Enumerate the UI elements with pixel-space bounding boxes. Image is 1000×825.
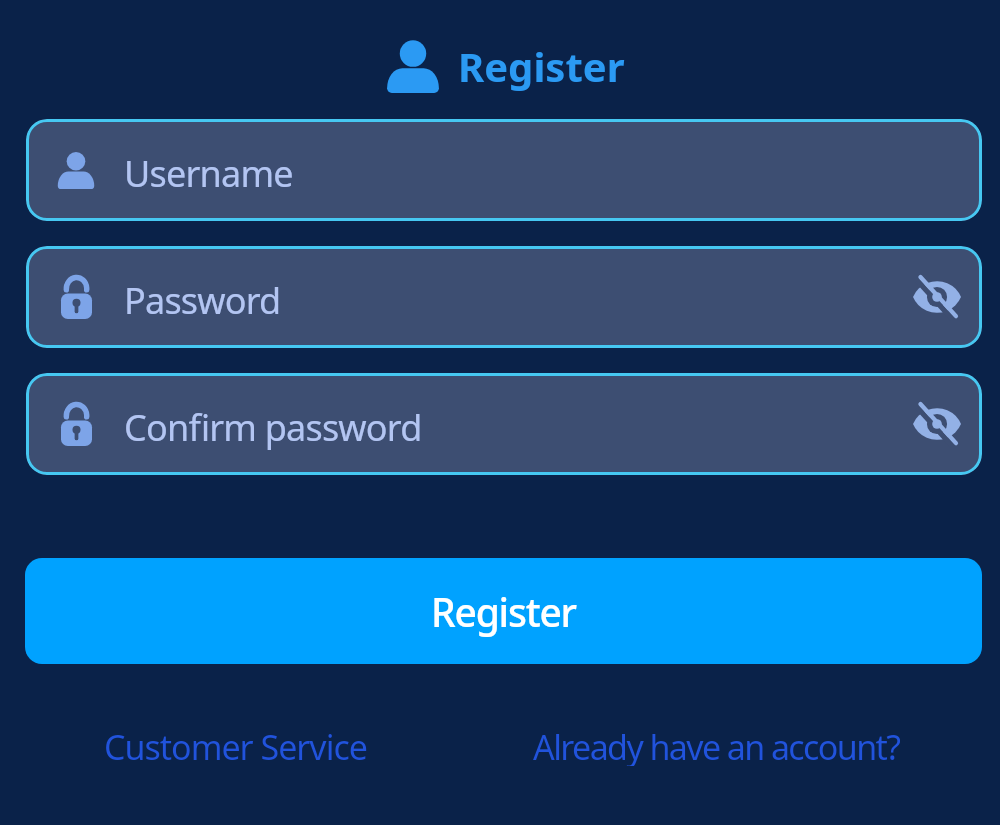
staticText: Register [458,39,625,93]
button[interactable]: Register [25,558,982,664]
button[interactable]: Password [26,246,982,348]
staticText: Register [431,585,576,638]
button[interactable]: Customer Service [104,724,367,766]
staticText: Username [124,149,293,198]
staticText: Password [124,276,281,325]
button[interactable]: Username [26,119,982,221]
button[interactable]: Confirm password [26,373,982,475]
staticText: Confirm password [124,403,422,452]
button[interactable]: Already have an account? [533,724,900,766]
